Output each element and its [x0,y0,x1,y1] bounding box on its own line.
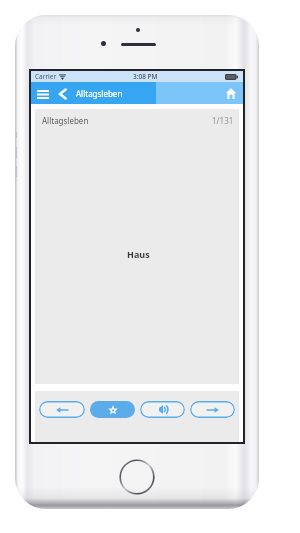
button[interactable]: Next [190,401,235,418]
staticText: Alltagsleben [76,88,123,99]
button[interactable]: Menu [32,84,53,105]
button[interactable]: Back [53,84,72,103]
staticText: Haus [127,248,150,260]
button[interactable]: Home [220,82,242,104]
button[interactable]: Speak [140,401,185,418]
staticText: 1/131 [212,115,234,126]
staticText: Carrier [35,72,57,81]
button[interactable]: Previous [39,401,85,418]
staticText: Alltagsleben [42,115,89,126]
staticText: 3:08 PM [133,72,158,81]
button[interactable]: Favourite [90,401,135,418]
